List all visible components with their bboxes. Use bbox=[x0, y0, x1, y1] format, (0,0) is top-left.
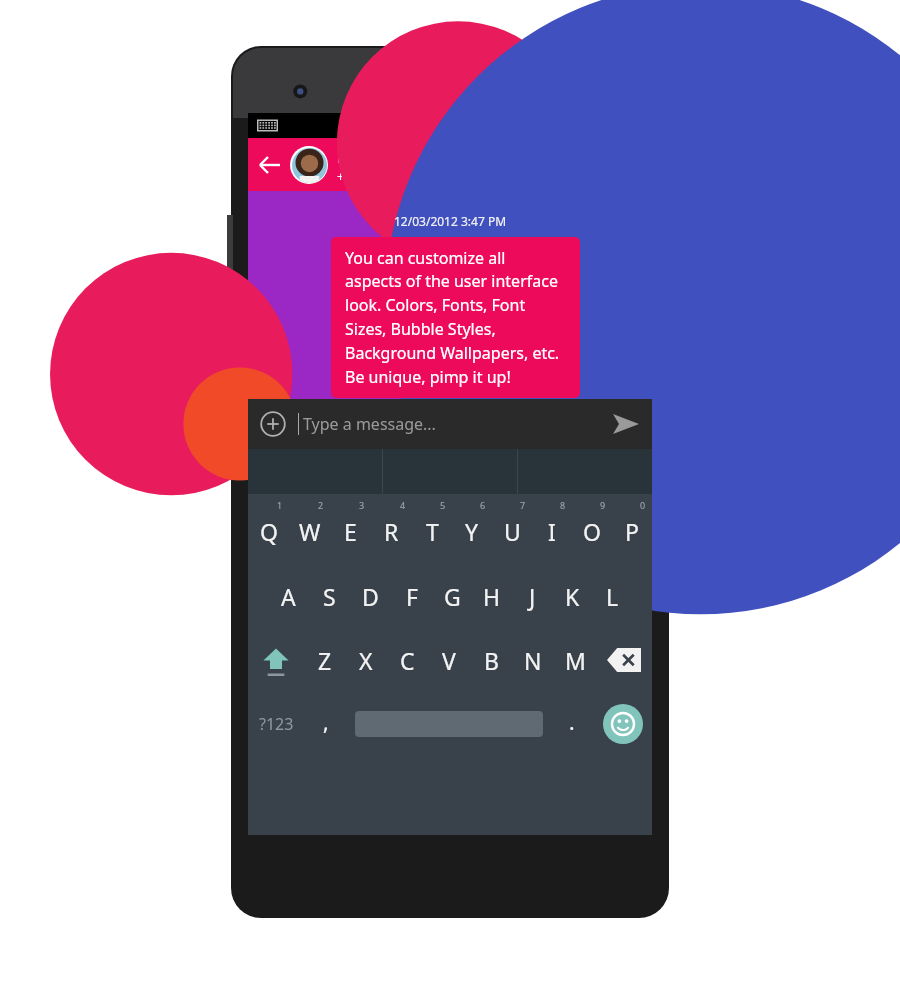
staticText: ?123 bbox=[259, 713, 294, 735]
button[interactable]: V bbox=[428, 628, 470, 692]
staticText: F bbox=[406, 581, 418, 612]
staticText: 0 bbox=[640, 499, 646, 511]
staticText: I bbox=[548, 516, 556, 547]
staticText: 2 bbox=[318, 499, 324, 511]
staticText: Z bbox=[318, 645, 332, 676]
button[interactable]: Shift bbox=[248, 628, 304, 692]
staticText: Michelle bbox=[337, 145, 404, 168]
staticText: J bbox=[529, 581, 536, 612]
staticText: P bbox=[625, 516, 639, 547]
staticText: 5 bbox=[440, 499, 446, 511]
button[interactable]: C bbox=[386, 628, 428, 692]
staticText: X bbox=[359, 645, 373, 676]
staticText: 1 bbox=[277, 499, 283, 511]
button[interactable]: 7 bbox=[492, 494, 532, 564]
button[interactable]: Send bbox=[600, 399, 652, 449]
button[interactable]: . bbox=[550, 692, 594, 756]
button[interactable]: ?123 bbox=[248, 692, 304, 756]
staticText: K bbox=[565, 581, 580, 612]
button[interactable]: 6 bbox=[452, 494, 492, 564]
staticText: R bbox=[384, 516, 399, 547]
button[interactable]: 5 bbox=[412, 494, 452, 564]
button[interactable]: B bbox=[470, 628, 512, 692]
button[interactable]: Backspace bbox=[596, 628, 652, 692]
button[interactable]: 0 bbox=[612, 494, 652, 564]
staticText: C bbox=[400, 645, 415, 676]
staticText: Type a message... bbox=[303, 413, 436, 435]
staticText: 6 bbox=[480, 499, 486, 511]
button[interactable]: 8 bbox=[532, 494, 572, 564]
button[interactable]: Back bbox=[248, 144, 290, 186]
staticText: . bbox=[569, 708, 575, 737]
staticText: T bbox=[426, 516, 439, 547]
button[interactable]: G bbox=[432, 564, 472, 628]
button[interactable] bbox=[348, 692, 550, 756]
button[interactable]: M bbox=[554, 628, 596, 692]
staticText: B bbox=[484, 645, 499, 676]
button[interactable]: J bbox=[512, 564, 552, 628]
staticText: +61400000008 bbox=[337, 168, 423, 185]
button[interactable]: 9 bbox=[572, 494, 612, 564]
button[interactable]: H bbox=[472, 564, 512, 628]
staticText: 9 bbox=[600, 499, 606, 511]
staticText: U bbox=[504, 516, 521, 547]
staticText: Y bbox=[465, 516, 479, 547]
button[interactable]: K bbox=[552, 564, 592, 628]
button[interactable]: S bbox=[309, 564, 350, 628]
staticText: A bbox=[281, 581, 296, 612]
button[interactable]: Z bbox=[304, 628, 345, 692]
staticText: 7 bbox=[520, 499, 526, 511]
staticText: 8 bbox=[560, 499, 566, 511]
button[interactable]: D bbox=[350, 564, 391, 628]
button[interactable]: Attach bbox=[248, 399, 298, 449]
button[interactable]: You can customize all aspects of the use… bbox=[331, 237, 580, 398]
button[interactable]: , bbox=[304, 692, 348, 756]
staticText: D bbox=[362, 581, 379, 612]
staticText: L bbox=[606, 581, 619, 612]
staticText: S bbox=[323, 581, 336, 612]
staticText: O bbox=[583, 516, 601, 547]
button[interactable]: Emoji bbox=[594, 692, 652, 756]
staticText: H bbox=[483, 581, 501, 612]
staticText: E bbox=[344, 516, 357, 547]
button[interactable]: X bbox=[345, 628, 386, 692]
button[interactable]: 4 bbox=[371, 494, 412, 564]
button[interactable]: N bbox=[512, 628, 554, 692]
staticText: Q bbox=[260, 516, 278, 547]
staticText: W bbox=[299, 516, 321, 547]
button[interactable]: F bbox=[391, 564, 432, 628]
button[interactable]: 1 bbox=[248, 494, 289, 564]
staticText: M bbox=[565, 645, 586, 676]
button[interactable]: 3 bbox=[330, 494, 371, 564]
staticText: N bbox=[524, 645, 542, 676]
button[interactable]: L bbox=[592, 564, 632, 628]
staticText: 12/03/2012 3:47 PM bbox=[394, 213, 507, 229]
button[interactable]: A bbox=[268, 564, 309, 628]
staticText: G bbox=[444, 581, 461, 612]
staticText: , bbox=[323, 708, 329, 737]
button[interactable]: 2 bbox=[289, 494, 330, 564]
staticText: 4 bbox=[400, 499, 406, 511]
staticText: 3 bbox=[359, 499, 365, 511]
staticText: You can customize all aspects of the use… bbox=[345, 247, 566, 388]
staticText: V bbox=[442, 645, 456, 676]
